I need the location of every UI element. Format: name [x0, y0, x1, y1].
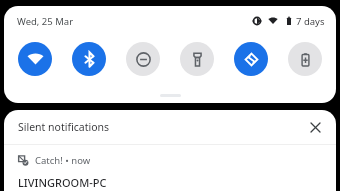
button[interactable]: Wi-Fi: [18, 42, 52, 76]
button[interactable]: Bluetooth: [72, 42, 106, 76]
other: Wi-Fi: [268, 16, 278, 26]
staticText: Catch! • now: [35, 154, 91, 167]
button[interactable]: Battery saver: [288, 42, 322, 76]
button[interactable]: Do not disturb: [126, 42, 160, 76]
staticText: 7 days: [296, 15, 325, 28]
button[interactable]: Flashlight: [180, 42, 214, 76]
button[interactable]: Clear silent notifications: [306, 118, 324, 136]
button[interactable]: Auto-rotate: [234, 42, 268, 76]
staticText: LIVINGROOM-PC: [18, 175, 107, 190]
staticText: Silent notifications: [18, 120, 110, 134]
other: Battery: [284, 16, 294, 26]
other: Do not disturb: [252, 16, 262, 26]
button[interactable]: Wed, 25 Mar: [17, 15, 74, 28]
button[interactable]: Catch! • now: [4, 145, 336, 191]
button[interactable]: Silent notifications: [4, 110, 336, 144]
